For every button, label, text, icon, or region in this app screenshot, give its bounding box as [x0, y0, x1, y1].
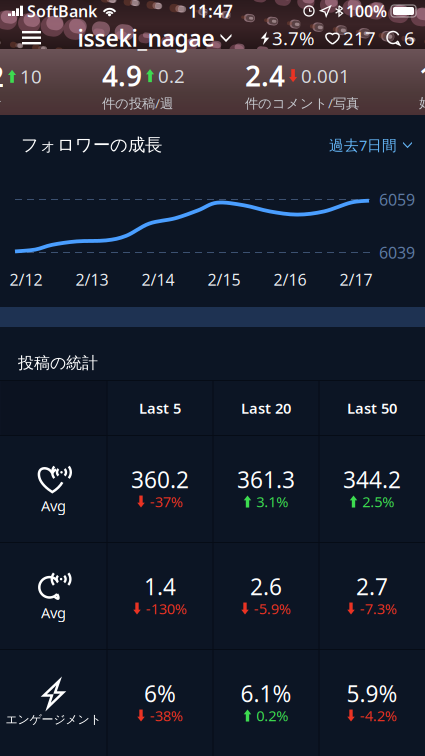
- staticText: Last 20: [241, 398, 291, 418]
- staticText: 361.3: [237, 464, 295, 494]
- staticText: 計: [0, 95, 1, 111]
- staticText: 0.2%: [256, 706, 288, 725]
- staticText: 投稿の統計: [18, 353, 98, 373]
- button[interactable]: Menu: [14, 25, 49, 51]
- staticText: Last 5: [139, 398, 181, 418]
- staticText: 過去7日間: [329, 135, 397, 155]
- staticText: 2.5%: [362, 492, 394, 511]
- staticText: -7.3%: [360, 599, 397, 618]
- staticText: 3.1%: [256, 492, 288, 511]
- staticText: 10: [20, 64, 42, 89]
- staticText: 6.1%: [240, 678, 291, 708]
- staticText: 6059: [379, 189, 415, 210]
- staticText: Avg: [41, 603, 66, 622]
- staticText: -38%: [150, 706, 183, 725]
- staticText: -5.9%: [254, 599, 291, 618]
- staticText: 0.001: [301, 63, 350, 88]
- staticText: 2/17: [339, 269, 372, 290]
- staticText: 2: [0, 58, 4, 95]
- staticText: 11:47: [188, 0, 233, 22]
- staticText: SoftBank: [27, 0, 97, 22]
- staticText: 2.4: [245, 57, 285, 94]
- staticText: 100%: [346, 0, 387, 22]
- staticText: -4.2%: [360, 706, 397, 725]
- staticText: 360.2: [131, 464, 189, 494]
- staticText: Last 50: [347, 398, 397, 418]
- staticText: 344.2: [343, 464, 401, 494]
- staticText: 2/15: [207, 269, 240, 290]
- staticText: -37%: [150, 492, 183, 511]
- staticText: 件の投稿/週: [102, 94, 173, 112]
- staticText: 6039: [379, 242, 415, 263]
- staticText: 2/16: [273, 269, 306, 290]
- staticText: 件のコメント/写真: [245, 94, 359, 112]
- staticText: -130%: [146, 599, 187, 618]
- staticText: エンゲージメント: [5, 712, 101, 727]
- staticText: 217: [343, 26, 376, 50]
- staticText: 5.9%: [346, 678, 397, 708]
- staticText: isseki_nagae: [77, 23, 214, 53]
- staticText: 6: [404, 26, 415, 50]
- staticText: フォロワーの成長: [21, 134, 162, 156]
- staticText: 0.2: [158, 63, 185, 88]
- staticText: 2.6: [250, 571, 282, 601]
- staticText: 好: [419, 95, 425, 111]
- staticText: 1: [419, 58, 425, 95]
- staticText: 2/14: [141, 269, 174, 290]
- staticText: 1.4: [144, 571, 176, 601]
- staticText: 2/13: [75, 269, 108, 290]
- button[interactable]: isseki_nagae: [77, 23, 231, 53]
- staticText: 2/12: [9, 269, 42, 290]
- staticText: 3.7%: [272, 26, 315, 50]
- staticText: 4.9: [102, 57, 142, 94]
- staticText: Avg: [41, 496, 66, 515]
- staticText: 6%: [144, 678, 176, 708]
- staticText: 2.7: [356, 571, 388, 601]
- button[interactable]: 過去7日間: [329, 135, 412, 155]
